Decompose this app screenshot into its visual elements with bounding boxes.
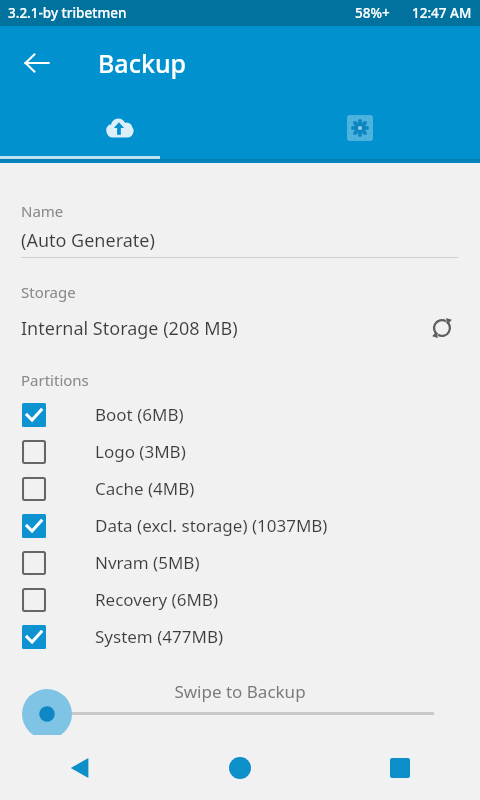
button[interactable]: Back bbox=[13, 39, 61, 87]
button[interactable]: Settings tab bbox=[240, 100, 480, 155]
staticText: Storage bbox=[21, 282, 76, 302]
button[interactable]: Backup tab bbox=[0, 100, 240, 155]
button[interactable]: Refresh storage bbox=[422, 308, 462, 348]
staticText: Boot (6MB) bbox=[95, 403, 184, 426]
button[interactable]: Back bbox=[0, 735, 160, 800]
staticText: 3.2.1-by tribetmen bbox=[8, 4, 127, 22]
button[interactable]: Cache (4MB) bbox=[0, 470, 480, 507]
button[interactable]: System (477MB) bbox=[0, 618, 480, 655]
button[interactable]: Recent apps bbox=[320, 735, 480, 800]
staticText: Data (excl. storage) (1037MB) bbox=[95, 514, 328, 537]
staticText: Cache (4MB) bbox=[95, 477, 195, 500]
staticText: Name bbox=[21, 201, 64, 221]
staticText: System (477MB) bbox=[95, 625, 224, 648]
button[interactable]: Data (excl. storage) (1037MB) bbox=[0, 507, 480, 544]
staticText: Swipe to Backup bbox=[174, 680, 306, 703]
staticText: Logo (3MB) bbox=[95, 440, 186, 463]
staticText: (Auto Generate) bbox=[21, 228, 155, 253]
staticText: Partitions bbox=[21, 370, 89, 390]
staticText: Backup bbox=[98, 46, 187, 80]
staticText: Recovery (6MB) bbox=[95, 588, 218, 611]
button[interactable]: Logo (3MB) bbox=[0, 433, 480, 470]
button[interactable]: Swipe to Backup bbox=[0, 673, 480, 731]
button[interactable]: Boot (6MB) bbox=[0, 396, 480, 433]
button[interactable]: Nvram (5MB) bbox=[0, 544, 480, 581]
button[interactable]: Recovery (6MB) bbox=[0, 581, 480, 618]
button[interactable]: Internal Storage (208 MB) bbox=[0, 316, 422, 341]
staticText: Nvram (5MB) bbox=[95, 551, 200, 574]
staticText: 58%+ bbox=[355, 4, 390, 22]
staticText: 12:47 AM bbox=[412, 4, 472, 22]
staticText: Internal Storage (208 MB) bbox=[21, 316, 238, 341]
button[interactable]: (Auto Generate) bbox=[0, 228, 480, 258]
button[interactable]: Home bbox=[160, 735, 320, 800]
